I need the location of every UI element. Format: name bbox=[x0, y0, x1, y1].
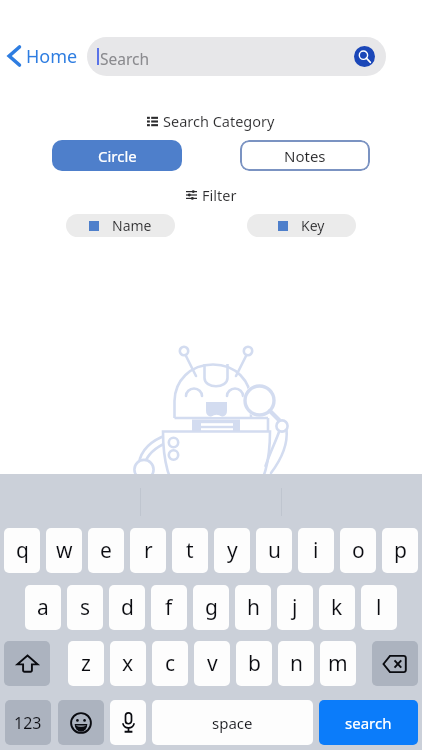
staticText: p bbox=[394, 536, 407, 565]
staticText: l bbox=[376, 593, 382, 622]
button[interactable]: y bbox=[214, 528, 250, 573]
button[interactable]: q bbox=[4, 528, 40, 573]
staticText: g bbox=[205, 593, 218, 622]
button[interactable]: b bbox=[236, 641, 272, 686]
button[interactable]: d bbox=[109, 585, 145, 630]
staticText: h bbox=[247, 593, 260, 622]
button[interactable]: Notes bbox=[240, 140, 370, 171]
button[interactable]: k bbox=[319, 585, 355, 630]
staticText: Filter bbox=[202, 185, 237, 205]
staticText: b bbox=[248, 649, 261, 678]
button[interactable]: f bbox=[151, 585, 187, 630]
button[interactable]: Backspace bbox=[372, 641, 418, 686]
button[interactable]: search bbox=[319, 700, 418, 745]
button[interactable]: Home bbox=[4, 42, 80, 70]
button[interactable]: w bbox=[46, 528, 82, 573]
button[interactable]: j bbox=[277, 585, 313, 630]
staticText: w bbox=[56, 536, 73, 565]
button[interactable]: h bbox=[235, 585, 271, 630]
staticText: u bbox=[268, 536, 281, 565]
button[interactable]: 123 bbox=[5, 700, 51, 745]
staticText: i bbox=[313, 536, 319, 565]
button[interactable]: g bbox=[193, 585, 229, 630]
staticText: o bbox=[352, 536, 365, 565]
staticText: Circle bbox=[98, 146, 137, 166]
button[interactable]: l bbox=[361, 585, 397, 630]
staticText: search bbox=[345, 713, 392, 733]
staticText: f bbox=[165, 593, 173, 622]
staticText: 123 bbox=[14, 712, 42, 734]
button[interactable]: Shift bbox=[4, 641, 50, 686]
button[interactable]: e bbox=[88, 528, 124, 573]
staticText: Notes bbox=[284, 146, 326, 166]
button[interactable]: n bbox=[278, 641, 314, 686]
staticText: c bbox=[165, 649, 176, 678]
button[interactable]: Search bbox=[354, 46, 375, 67]
staticText: r bbox=[144, 536, 153, 565]
button[interactable]: Circle bbox=[52, 140, 182, 171]
staticText: s bbox=[80, 593, 91, 622]
staticText: Search bbox=[100, 48, 150, 69]
staticText: n bbox=[290, 649, 303, 678]
staticText: space bbox=[212, 713, 253, 733]
staticText: Search Category bbox=[163, 111, 275, 131]
button[interactable]: z bbox=[68, 641, 104, 686]
staticText: z bbox=[81, 649, 91, 678]
button[interactable]: Search bbox=[87, 37, 386, 76]
button[interactable]: Emoji bbox=[58, 700, 104, 745]
button[interactable]: i bbox=[298, 528, 334, 573]
button[interactable]: a bbox=[25, 585, 61, 630]
button[interactable]: Dictate bbox=[110, 700, 146, 745]
button[interactable]: s bbox=[67, 585, 103, 630]
button[interactable]: c bbox=[152, 641, 188, 686]
button[interactable]: v bbox=[194, 641, 230, 686]
staticText: m bbox=[328, 649, 348, 678]
button[interactable]: r bbox=[130, 528, 166, 573]
staticText: v bbox=[207, 649, 218, 678]
staticText: e bbox=[100, 536, 112, 565]
staticText: k bbox=[331, 593, 343, 622]
staticText: t bbox=[186, 536, 194, 565]
button[interactable]: o bbox=[340, 528, 376, 573]
button[interactable]: x bbox=[110, 641, 146, 686]
button[interactable]: space bbox=[152, 700, 313, 745]
staticText: x bbox=[122, 649, 134, 678]
staticText: q bbox=[16, 536, 29, 565]
staticText: y bbox=[227, 536, 238, 565]
button[interactable]: u bbox=[256, 528, 292, 573]
button[interactable]: t bbox=[172, 528, 208, 573]
staticText: Home bbox=[26, 44, 78, 69]
button[interactable]: Key bbox=[247, 214, 356, 237]
button[interactable]: Name bbox=[66, 214, 175, 237]
staticText: d bbox=[121, 593, 134, 622]
staticText: Name bbox=[112, 216, 152, 235]
staticText: j bbox=[292, 593, 298, 622]
button[interactable]: m bbox=[320, 641, 356, 686]
staticText: a bbox=[37, 593, 49, 622]
button[interactable]: p bbox=[382, 528, 418, 573]
staticText: Key bbox=[301, 216, 325, 235]
